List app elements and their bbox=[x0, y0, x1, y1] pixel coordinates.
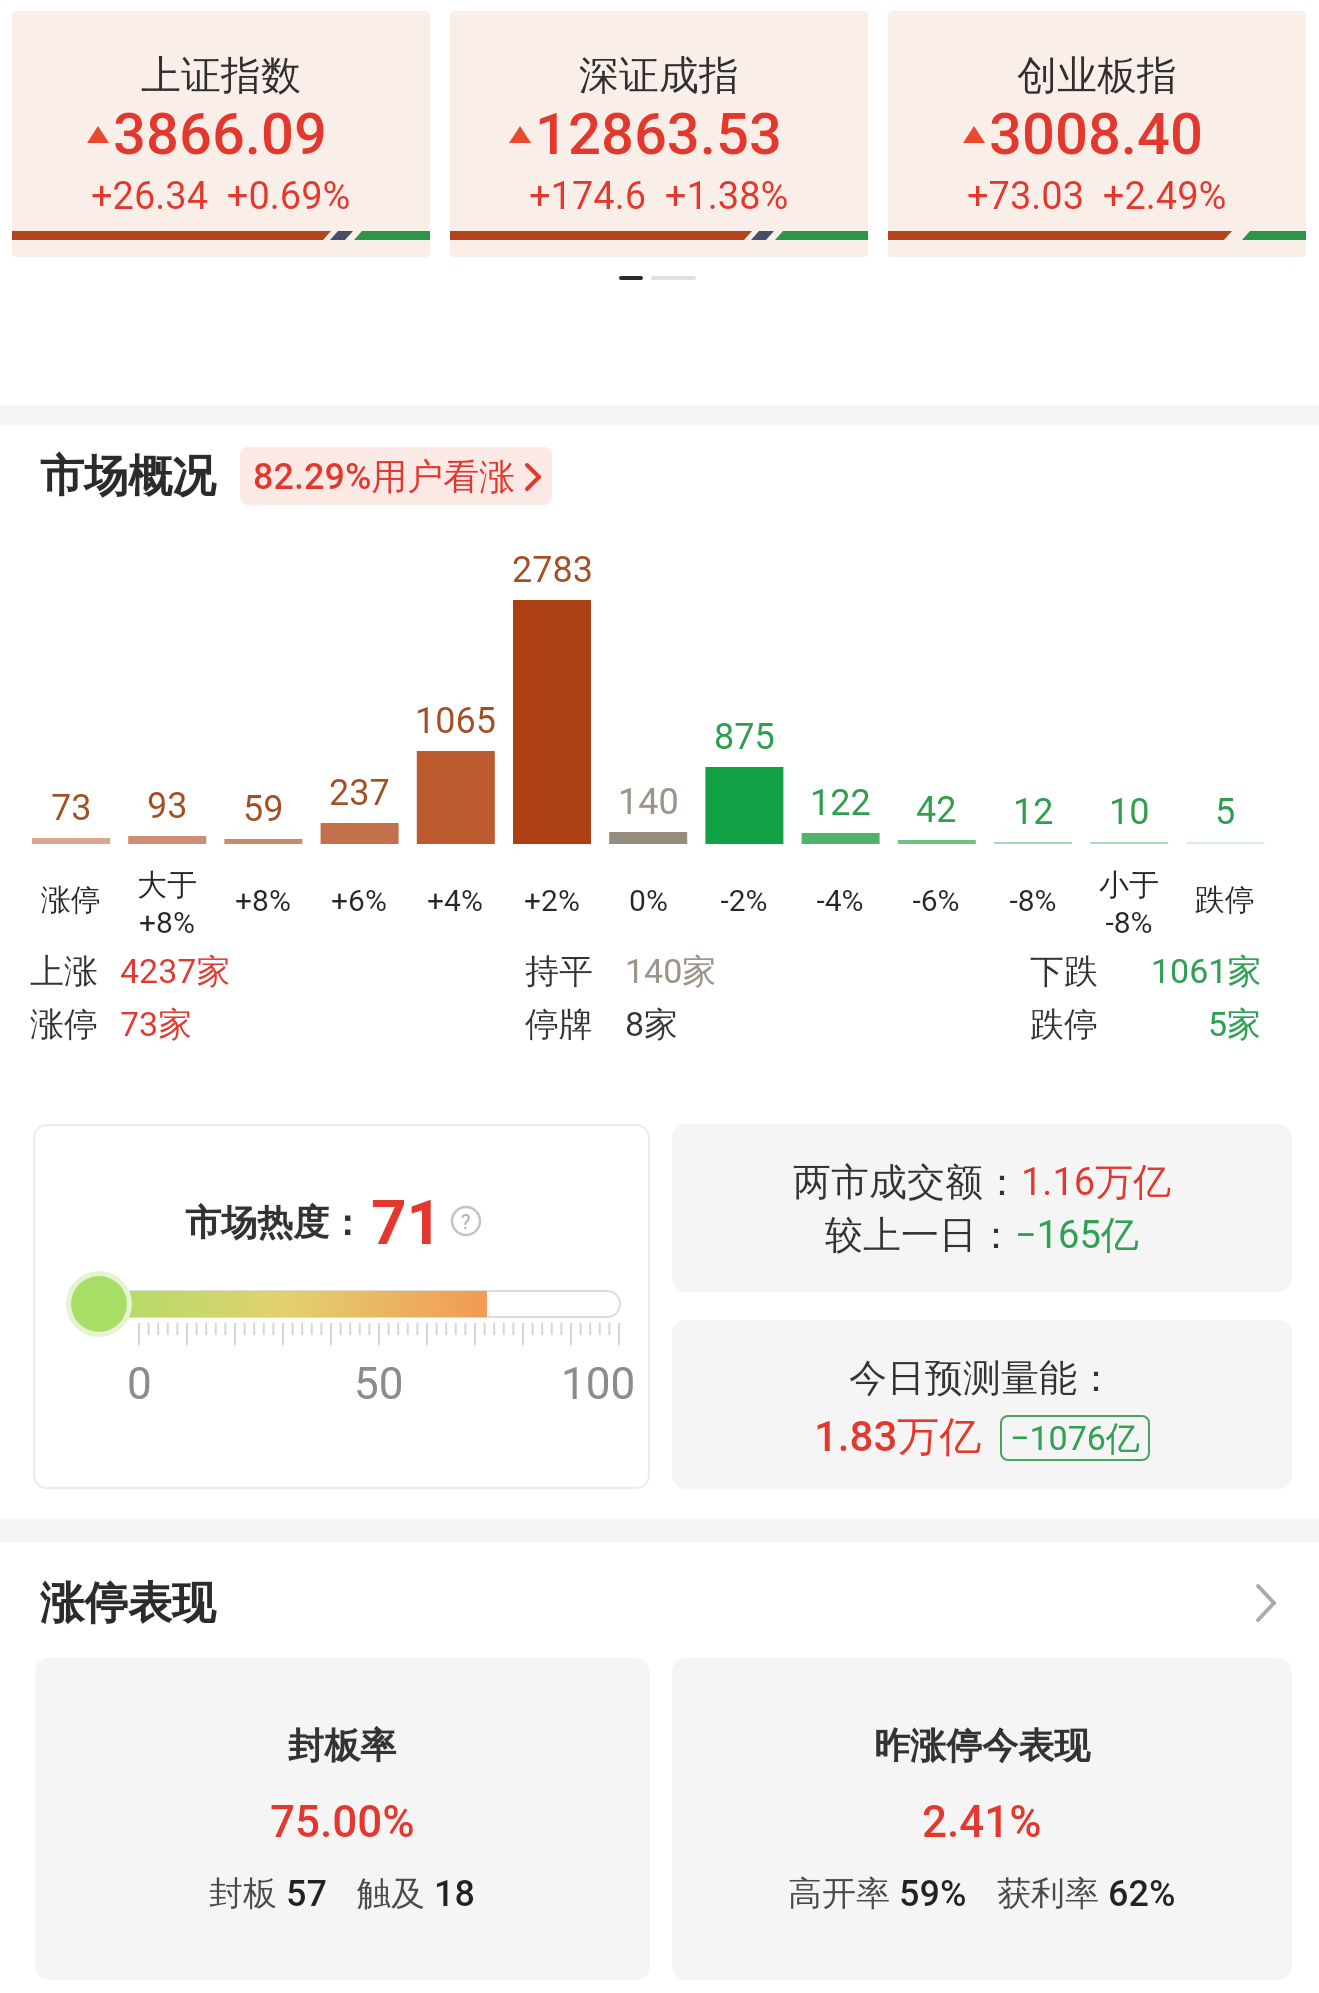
button[interactable] bbox=[33, 1124, 650, 1489]
staticText: 122 bbox=[810, 782, 871, 824]
staticText: 1.83万亿 bbox=[814, 1411, 982, 1464]
staticText: 小于 -8% bbox=[1099, 866, 1159, 940]
staticText: -2% bbox=[720, 883, 768, 918]
staticText: 100 bbox=[561, 1358, 636, 1410]
staticText: 62% bbox=[1108, 1873, 1176, 1915]
staticText: 市场热度： bbox=[185, 1200, 365, 1245]
staticText: 75.00% bbox=[270, 1796, 415, 1848]
staticText: 2.41% bbox=[922, 1796, 1042, 1848]
staticText: 高开率 bbox=[788, 1872, 899, 1915]
button[interactable] bbox=[12, 11, 430, 257]
staticText: 较上一日： bbox=[825, 1211, 1015, 1259]
staticText: 93 bbox=[147, 785, 188, 827]
staticText: 73家 bbox=[120, 1003, 193, 1046]
staticText: 涨停 bbox=[41, 881, 101, 919]
staticText: 下跌 bbox=[1030, 950, 1098, 993]
staticText: 71 bbox=[371, 1186, 443, 1258]
staticText: 18 bbox=[434, 1873, 475, 1915]
staticText: +2% bbox=[524, 883, 580, 918]
staticText: ? bbox=[461, 1210, 471, 1233]
staticText: 今日预测量能： bbox=[849, 1354, 1115, 1402]
staticText: 上证指数 bbox=[141, 50, 301, 100]
staticText: 50 bbox=[354, 1358, 404, 1410]
staticText: +174.6 +1.38% bbox=[529, 174, 789, 219]
staticText: 市场概况 bbox=[40, 449, 216, 504]
staticText: -6% bbox=[912, 883, 960, 918]
staticText: 10 bbox=[1109, 791, 1150, 833]
button[interactable] bbox=[35, 1658, 650, 1980]
staticText: 创业板指 bbox=[1017, 50, 1177, 100]
staticText: 停牌 bbox=[525, 1003, 593, 1046]
staticText: 1061家 bbox=[1151, 950, 1262, 993]
staticText: +8% bbox=[235, 883, 291, 918]
staticText: 封板率 bbox=[288, 1723, 396, 1768]
staticText: +73.03 +2.49% bbox=[967, 174, 1227, 219]
staticText: 持平 bbox=[525, 950, 593, 993]
staticText: 82.29%用户看涨 bbox=[253, 454, 516, 499]
staticText: 上涨 bbox=[30, 950, 98, 993]
staticText: 57 bbox=[286, 1873, 327, 1915]
staticText: +4% bbox=[427, 883, 483, 918]
staticText: 触及 bbox=[357, 1872, 434, 1915]
staticText: −165亿 bbox=[1015, 1211, 1139, 1259]
staticText: +6% bbox=[331, 883, 387, 918]
staticText: 237 bbox=[329, 772, 390, 814]
staticText: +26.34 +0.69% bbox=[91, 174, 351, 219]
staticText: 5 bbox=[1215, 791, 1236, 833]
staticText: 封板 bbox=[209, 1872, 286, 1915]
staticText: 昨涨停今表现 bbox=[874, 1723, 1090, 1768]
staticText: 875 bbox=[714, 716, 775, 758]
staticText: 8家 bbox=[625, 1003, 679, 1046]
staticText: 140 bbox=[618, 781, 679, 823]
staticText: 3866.09 bbox=[113, 100, 327, 168]
button[interactable] bbox=[888, 11, 1306, 257]
button[interactable] bbox=[0, 1570, 1319, 1636]
staticText: -4% bbox=[816, 883, 864, 918]
staticText: 5家 bbox=[1208, 1003, 1262, 1046]
staticText: 获利率 bbox=[997, 1872, 1108, 1915]
staticText: 0% bbox=[629, 883, 668, 918]
staticText: 涨停 bbox=[30, 1003, 98, 1046]
button[interactable] bbox=[450, 11, 868, 257]
staticText: 跌停 bbox=[1195, 881, 1255, 919]
button[interactable] bbox=[672, 1658, 1292, 1980]
staticText: 1.16万亿 bbox=[1021, 1158, 1172, 1206]
button[interactable] bbox=[672, 1124, 1292, 1292]
staticText: 140家 bbox=[625, 950, 717, 993]
staticText: -8% bbox=[1009, 883, 1057, 918]
staticText: −1076亿 bbox=[1010, 1417, 1140, 1460]
staticText: 0 bbox=[127, 1358, 152, 1410]
staticText: 73 bbox=[51, 787, 92, 829]
staticText: 涨停表现 bbox=[40, 1576, 216, 1631]
staticText: 12863.53 bbox=[535, 100, 782, 168]
staticText: 1065 bbox=[415, 700, 496, 742]
staticText: 两市成交额： bbox=[793, 1158, 1021, 1206]
staticText: 59% bbox=[899, 1873, 967, 1915]
staticText: 4237家 bbox=[120, 950, 231, 993]
staticText: 42 bbox=[916, 789, 957, 831]
staticText: 2783 bbox=[512, 549, 593, 591]
staticText: 59 bbox=[243, 788, 284, 830]
staticText: 大于 +8% bbox=[137, 866, 197, 940]
staticText: 跌停 bbox=[1030, 1003, 1098, 1046]
staticText: 深证成指 bbox=[579, 50, 739, 100]
button[interactable]: 82.29%用户看涨 bbox=[240, 447, 552, 505]
staticText: 12 bbox=[1013, 791, 1054, 833]
staticText: 3008.40 bbox=[989, 100, 1203, 168]
button[interactable] bbox=[672, 1320, 1292, 1489]
